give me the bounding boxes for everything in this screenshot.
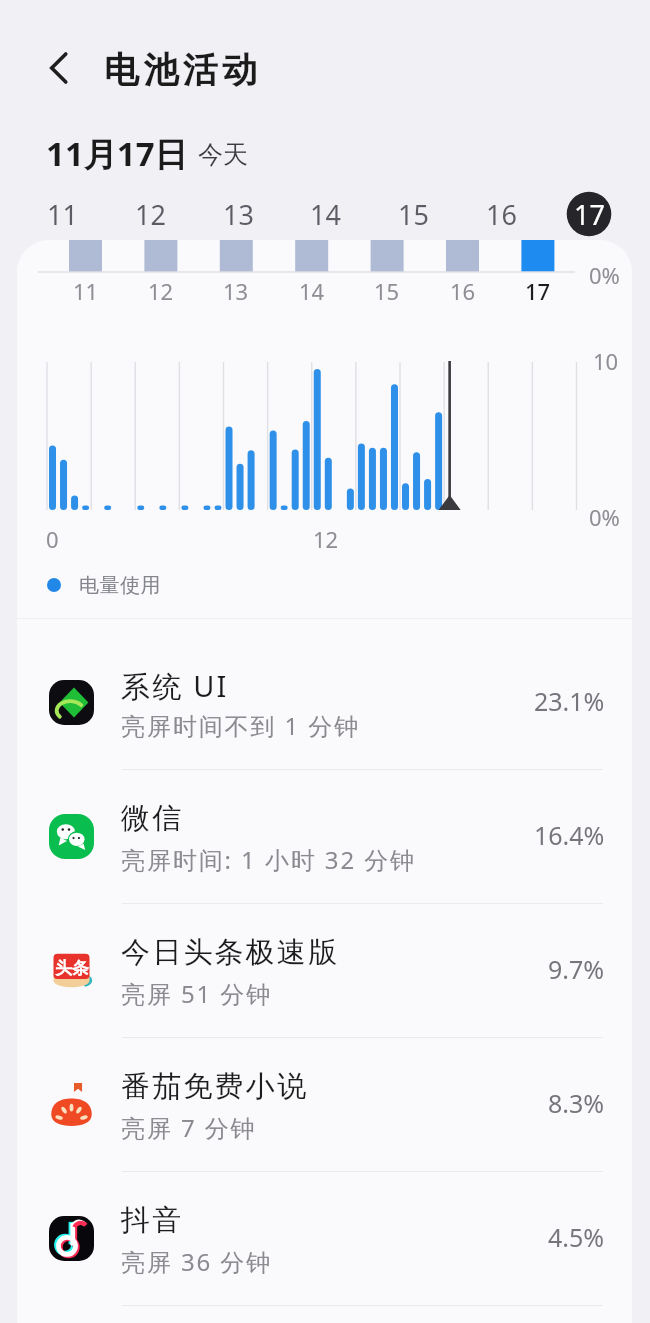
staticText: 14 <box>299 276 325 306</box>
staticText: 0% <box>589 502 620 532</box>
staticText: 10 <box>593 346 619 376</box>
staticText: 0 <box>46 524 59 554</box>
staticText: 12 <box>135 196 166 233</box>
button[interactable]: 13 <box>208 184 268 244</box>
staticText: 23.1% <box>534 684 605 718</box>
button[interactable]: 16 <box>471 184 531 244</box>
staticText: 16.4% <box>534 818 605 852</box>
staticText: 电池活动 <box>104 48 262 92</box>
staticText: 11月17日 <box>46 131 188 176</box>
button[interactable]: 17 <box>559 184 619 244</box>
staticText: 电量使用 <box>79 573 162 598</box>
staticText: 亮屏时间: 1 小时 32 分钟 <box>121 843 416 876</box>
staticText: 微信 <box>121 800 184 837</box>
staticText: 13 <box>223 276 249 306</box>
button[interactable]: 12 <box>120 184 180 244</box>
button[interactable]: 15 <box>383 184 443 244</box>
button[interactable]: 11 <box>32 184 92 244</box>
staticText: 番茄免费小说 <box>121 1068 309 1105</box>
button[interactable]: 14 <box>295 184 355 244</box>
staticText: 亮屏 36 分钟 <box>121 1245 273 1278</box>
button[interactable]: 微信 <box>17 770 632 904</box>
staticText: 今天 <box>198 139 248 170</box>
staticText: 14 <box>310 196 341 233</box>
staticText: 16 <box>450 276 476 306</box>
staticText: 头条 <box>55 958 89 979</box>
staticText: 亮屏 51 分钟 <box>121 977 273 1010</box>
staticText: 13 <box>223 196 254 233</box>
staticText: 15 <box>398 196 429 233</box>
staticText: 系统 UI <box>121 666 229 706</box>
button[interactable]: 头条 <box>17 904 632 1038</box>
staticText: 亮屏 7 分钟 <box>121 1111 257 1144</box>
staticText: 亮屏时间不到 1 分钟 <box>121 709 361 742</box>
staticText: 17 <box>525 276 551 306</box>
staticText: 0% <box>589 260 620 290</box>
button[interactable]: 系统 UI <box>17 636 632 770</box>
staticText: 11 <box>47 196 78 233</box>
staticText: 4.5% <box>548 1220 605 1254</box>
staticText: 12 <box>148 276 174 306</box>
staticText: 8.3% <box>548 1086 605 1120</box>
staticText: 16 <box>486 196 517 233</box>
button[interactable]: 番茄免费小说 <box>17 1038 632 1172</box>
staticText: 抖音 <box>121 1202 184 1239</box>
staticText: 12 <box>313 524 339 554</box>
staticText: 15 <box>374 276 400 306</box>
staticText: 今日头条极速版 <box>121 934 340 971</box>
button[interactable]: Back <box>35 43 85 93</box>
staticText: 11 <box>73 276 99 306</box>
button[interactable]: 电量使用 <box>47 571 162 599</box>
staticText: 9.7% <box>548 952 605 986</box>
staticText: 17 <box>574 196 605 233</box>
button[interactable]: 抖音 <box>17 1172 632 1306</box>
